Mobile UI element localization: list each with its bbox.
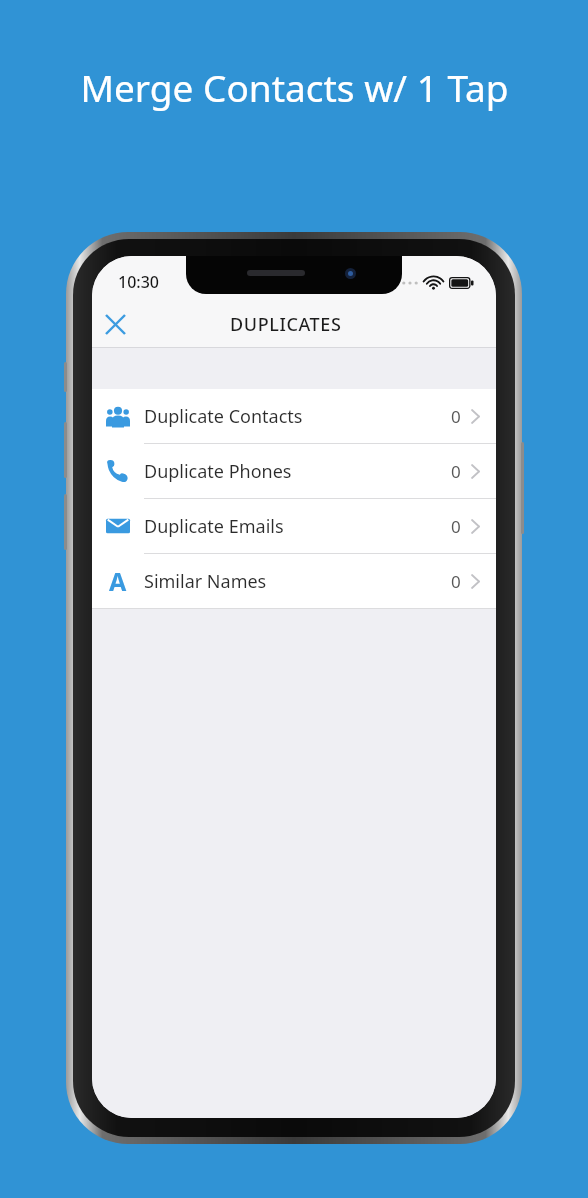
staticText: Duplicate Contacts [144, 404, 451, 429]
button[interactable]: Duplicate Phones [92, 444, 496, 498]
staticText: DUPLICATES [230, 312, 342, 337]
button[interactable]: Close [92, 301, 138, 347]
staticText: 0 [451, 570, 461, 593]
staticText: 0 [451, 515, 461, 538]
staticText: Similar Names [144, 569, 451, 594]
staticText: Duplicate Phones [144, 459, 451, 484]
staticText: Merge Contacts w/ 1 Tap [80, 62, 509, 112]
staticText: A [109, 564, 127, 598]
staticText: 0 [451, 405, 461, 428]
staticText: 10:30 [118, 271, 159, 293]
staticText: 0 [451, 460, 461, 483]
button[interactable]: Duplicate Emails [92, 499, 496, 553]
button[interactable]: A [92, 554, 496, 608]
button[interactable]: Duplicate Contacts [92, 389, 496, 443]
staticText: Duplicate Emails [144, 514, 451, 539]
